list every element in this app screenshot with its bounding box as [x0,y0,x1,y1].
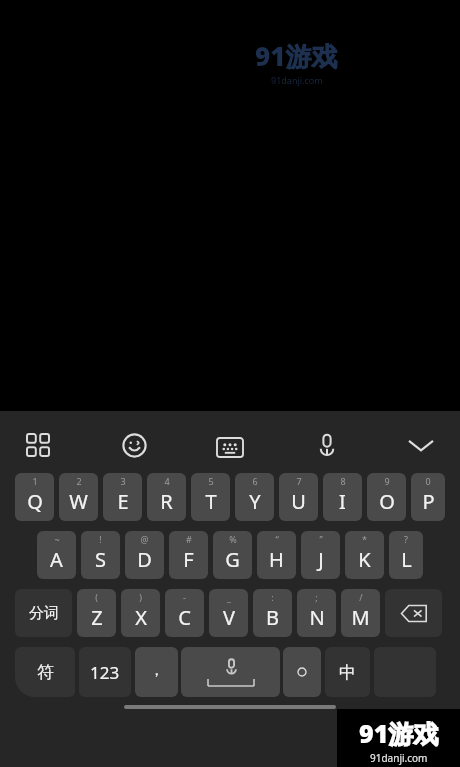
button[interactable]: @ [125,531,164,579]
staticText: _ [227,591,231,603]
button[interactable]: 8 [323,473,362,521]
staticText: E [117,488,129,515]
staticText: X [135,604,147,631]
button[interactable]: Emoji [116,427,152,463]
button[interactable]: 9 [367,473,406,521]
staticText: * [362,533,367,545]
staticText: P [422,488,435,515]
staticText: 8 [340,475,346,487]
staticText: W [69,488,88,515]
button[interactable]: ” [301,531,340,579]
button[interactable]: _ [209,589,248,637]
staticText: ) [139,591,142,603]
staticText: J [318,546,324,573]
staticText: D [137,546,152,573]
button[interactable]: / [341,589,380,637]
button[interactable]: ， [135,647,178,697]
button[interactable] [283,647,321,697]
button[interactable]: - [165,589,204,637]
staticText: @ [140,533,149,545]
staticText: 6 [252,475,258,487]
staticText: C [178,604,191,631]
staticText: N [309,604,325,631]
button[interactable]: % [213,531,252,579]
staticText: % [229,533,237,545]
button[interactable]: : [253,589,292,637]
button[interactable]: 123 [79,647,131,697]
button[interactable]: Backspace [385,589,442,637]
button[interactable]: 4 [147,473,186,521]
button[interactable]: ( [77,589,116,637]
button[interactable]: * [345,531,384,579]
button[interactable]: 3 [103,473,142,521]
staticText: ( [95,591,98,603]
staticText: 91游戏 [359,716,439,750]
button[interactable]: Space [181,647,280,697]
staticText: 123 [90,661,120,684]
button[interactable]: ? [389,531,423,579]
button[interactable]: ; [297,589,336,637]
button[interactable]: 中 [325,647,370,697]
staticText: 91游戏 [255,38,338,74]
staticText: 中 [339,662,356,683]
staticText: ? [404,533,408,545]
staticText: 分词 [29,604,59,623]
button[interactable]: ) [121,589,160,637]
button[interactable]: “ [257,531,296,579]
staticText: 0 [425,475,431,487]
staticText: O [379,488,395,515]
button[interactable]: Hide keyboard [403,427,439,463]
button[interactable]: 分词 [15,589,72,637]
staticText: B [266,604,279,631]
button[interactable]: 6 [235,473,274,521]
staticText: R [160,488,173,515]
staticText: - [183,591,186,603]
staticText: T [205,488,217,515]
staticText: ; [315,591,318,603]
staticText: 符 [37,662,54,683]
staticText: Q [27,488,43,515]
staticText: V [223,604,235,631]
button[interactable]: 0 [411,473,445,521]
staticText: ， [149,661,164,680]
button[interactable]: 符 [15,647,75,697]
staticText: 5 [208,475,214,487]
staticText: “ [275,533,279,545]
button[interactable]: 1 [15,473,54,521]
staticText: ! [99,533,102,545]
staticText: U [291,488,306,515]
staticText: # [186,533,192,545]
staticText: L [401,546,412,573]
staticText: 7 [296,475,302,487]
staticText: H [269,546,284,573]
staticText: 91danji.com [271,74,323,86]
button[interactable]: ~ [37,531,76,579]
staticText: A [50,546,63,573]
button[interactable]: Apps [21,428,55,462]
staticText: 2 [76,475,82,487]
staticText: Y [249,488,261,515]
button[interactable]: # [169,531,208,579]
staticText: Z [91,604,103,631]
staticText: 4 [164,475,170,487]
button[interactable]: Voice input [309,427,345,463]
staticText: ” [319,533,323,545]
button[interactable]: ! [81,531,120,579]
button[interactable]: 7 [279,473,318,521]
button[interactable]: 2 [59,473,98,521]
button[interactable]: 5 [191,473,230,521]
staticText: 9 [384,475,390,487]
staticText: I [339,488,346,515]
staticText: / [359,591,363,603]
staticText: 91danji.com [370,751,428,765]
staticText: F [183,546,194,573]
staticText: K [358,546,371,573]
button[interactable]: Keyboard layout [212,429,248,465]
staticText: G [225,546,240,573]
staticText: 1 [32,475,38,487]
staticText: M [351,604,370,631]
staticText: : [271,591,274,603]
staticText: S [95,546,106,573]
staticText: ~ [54,533,60,545]
